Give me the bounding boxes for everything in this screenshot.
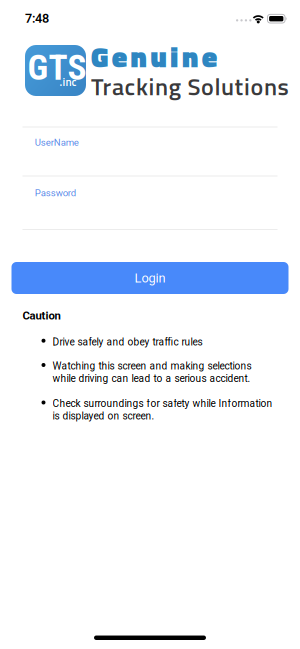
staticText: GTS bbox=[27, 47, 86, 88]
staticText: is displayed on screen. bbox=[52, 410, 154, 422]
button[interactable]: Login bbox=[11, 262, 288, 294]
staticText: UserName bbox=[35, 137, 79, 148]
staticText: Check surroundings for safety while Info… bbox=[52, 398, 272, 410]
staticText: Tracking Solutions bbox=[91, 68, 288, 104]
staticText: Caution bbox=[22, 309, 60, 322]
staticText: 7:48 bbox=[25, 11, 49, 26]
staticText: Genuine bbox=[91, 35, 217, 78]
button[interactable]: UserName bbox=[22, 122, 277, 162]
staticText: Login bbox=[134, 270, 165, 285]
button[interactable]: Password bbox=[22, 173, 277, 213]
staticText: Password bbox=[35, 187, 76, 199]
staticText: while driving can lead to a serious acci… bbox=[52, 373, 250, 385]
staticText: .inc bbox=[59, 73, 76, 90]
staticText: Drive safely and obey traffic rules bbox=[52, 336, 202, 348]
staticText: Watching this screen and making selectio… bbox=[52, 360, 251, 372]
